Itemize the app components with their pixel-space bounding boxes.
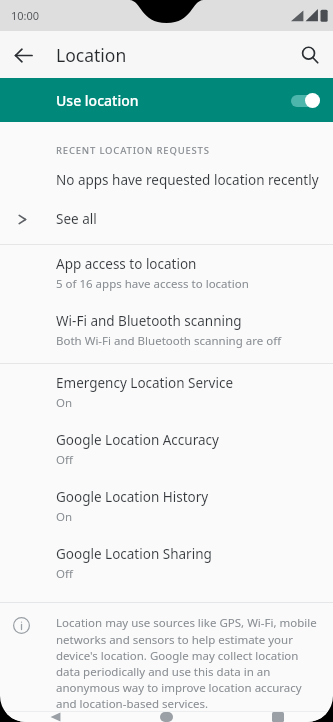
staticText: Wi-Fi and Bluetooth scanning	[56, 312, 242, 330]
staticText: RECENT LOCATION REQUESTS	[56, 144, 210, 157]
button[interactable]: Home	[111, 712, 222, 722]
staticText: Off	[56, 452, 73, 468]
button[interactable]: Search	[287, 32, 333, 78]
staticText: Location may use sources like GPS, Wi-Fi…	[56, 615, 317, 711]
staticText: Google Location History	[56, 488, 209, 506]
staticText: Both Wi-Fi and Bluetooth scanning are of…	[56, 333, 282, 349]
button[interactable]: Back	[0, 712, 111, 722]
staticText: Use location	[56, 91, 139, 110]
button[interactable]: Use location	[0, 78, 333, 122]
button[interactable]: Recents	[222, 712, 333, 722]
button[interactable]: No apps have requested location recently	[0, 160, 333, 200]
button[interactable]: Google Location Accuracy	[0, 421, 333, 478]
button[interactable]: Google Location Sharing	[0, 535, 333, 592]
button[interactable]: Back	[0, 32, 46, 78]
staticText: Emergency Location Service	[56, 374, 234, 392]
button[interactable]: Emergency Location Service	[0, 364, 333, 421]
staticText: On	[56, 395, 73, 411]
staticText: No apps have requested location recently	[56, 171, 319, 189]
staticText: App access to location	[56, 255, 197, 273]
staticText: Google Location Sharing	[56, 545, 212, 563]
button[interactable]: Wi-Fi and Bluetooth scanning	[0, 302, 333, 359]
button[interactable]: App access to location	[0, 245, 333, 302]
button[interactable]: Google Location History	[0, 478, 333, 535]
staticText: On	[56, 509, 73, 525]
staticText: Google Location Accuracy	[56, 431, 219, 449]
staticText: Off	[56, 566, 73, 582]
staticText: 10:00	[11, 8, 40, 23]
staticText: 5 of 16 apps have access to location	[56, 276, 249, 292]
staticText: Location	[56, 43, 127, 67]
button[interactable]: See all	[0, 200, 333, 238]
staticText: See all	[56, 210, 97, 228]
